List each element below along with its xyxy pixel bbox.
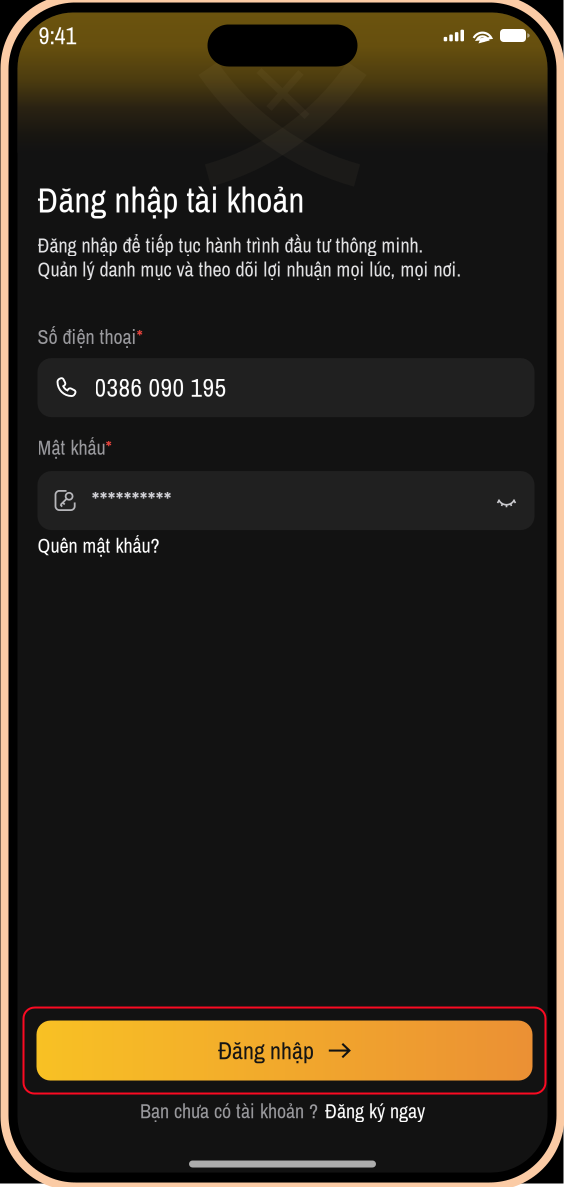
staticText: ********** (91, 483, 171, 518)
button[interactable]: Đăng nhập (17, 1008, 547, 1094)
staticText: Đăng nhập tài khoản (37, 176, 304, 223)
staticText: 9:41 (38, 19, 76, 52)
staticText: * (136, 323, 142, 350)
staticText: Số điện thoại (37, 323, 136, 350)
staticText: Bạn chưa có tài khoản ? (140, 1098, 318, 1124)
button[interactable]: Quên mật khẩu? (17, 530, 159, 564)
staticText: Đăng ký ngay (325, 1098, 425, 1124)
staticText: * (105, 434, 111, 461)
staticText: Quản lý danh mục và theo dõi lợi nhuận m… (37, 256, 461, 283)
staticText: Quên mật khẩu? (37, 532, 159, 559)
staticText: Đăng nhập để tiếp tục hành trình đầu tư … (37, 232, 423, 259)
staticText: 0386 090 195 (94, 371, 226, 405)
button[interactable]: Bạn chưa có tài khoản ? (17, 1094, 547, 1128)
button[interactable]: Show password (490, 485, 522, 517)
staticText: Mật khẩu (37, 434, 105, 461)
staticText: Đăng nhập (218, 1034, 314, 1067)
